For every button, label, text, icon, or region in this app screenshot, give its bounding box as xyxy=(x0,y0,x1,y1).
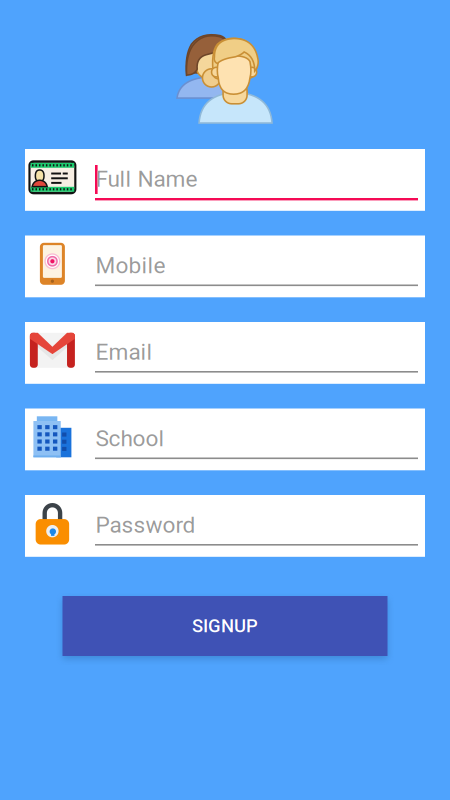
button[interactable]: School xyxy=(25,408,425,470)
staticText: Full Name xyxy=(95,166,197,192)
staticText: Password xyxy=(95,512,195,538)
button[interactable]: Full Name xyxy=(25,149,425,211)
button[interactable]: Mobile xyxy=(25,235,425,297)
staticText: School xyxy=(95,425,164,452)
staticText: Email xyxy=(95,339,152,365)
button[interactable]: Email xyxy=(25,322,425,384)
staticText: Mobile xyxy=(95,252,165,279)
staticText: SIGNUP xyxy=(192,615,258,637)
button[interactable]: SIGNUP xyxy=(62,596,387,656)
button[interactable]: Password xyxy=(25,495,425,557)
